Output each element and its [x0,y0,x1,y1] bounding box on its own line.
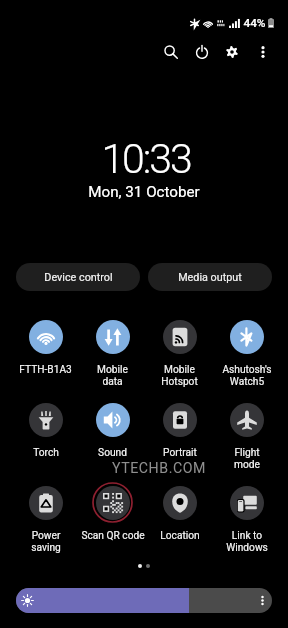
button[interactable]: Ashutosh's Watch5 [213,316,280,388]
staticText: Portrait [163,447,197,459]
staticText: Location [160,530,200,542]
button[interactable]: Mobile data [79,316,146,388]
staticText: Link to Windows [226,530,268,554]
staticText: Device control [44,271,113,284]
button[interactable]: Flight mode [213,399,280,471]
staticText: Mobile Hotspot [161,364,198,388]
staticText: Mon, 31 October [88,183,200,201]
staticText: Scan QR code [81,530,145,542]
button[interactable]: Power saving [12,482,79,554]
staticText: Ashutosh's Watch5 [222,364,272,388]
button[interactable]: Device control [16,263,140,291]
button[interactable]: Location [146,482,213,542]
button[interactable]: Power off [187,37,217,67]
button[interactable]: Portrait [146,399,213,459]
staticText: Power saving [31,530,61,554]
button[interactable]: Mobile Hotspot [146,316,213,388]
button[interactable]: Scan QR code [79,482,146,542]
button[interactable]: Brightness [16,588,272,613]
staticText: Mobile data [97,364,128,388]
button[interactable]: Search [156,37,186,67]
button[interactable]: Torch [12,399,79,459]
button[interactable]: Link to Windows [213,482,280,554]
button[interactable]: Sound [79,399,146,459]
staticText: 44% [243,16,266,30]
button[interactable]: Settings [217,37,247,67]
button[interactable]: More options [248,37,278,67]
button[interactable]: Media output [148,263,272,291]
staticText: Media output [178,271,242,284]
staticText: FTTH-B1A3 [19,364,72,376]
staticText: Sound [98,447,127,459]
button[interactable]: FTTH-B1A3 [12,316,79,376]
staticText: 10:33 [101,135,191,183]
staticText: Torch [33,447,59,459]
staticText: YTECHB.COM [112,460,206,477]
staticText: Flight mode [234,447,260,471]
